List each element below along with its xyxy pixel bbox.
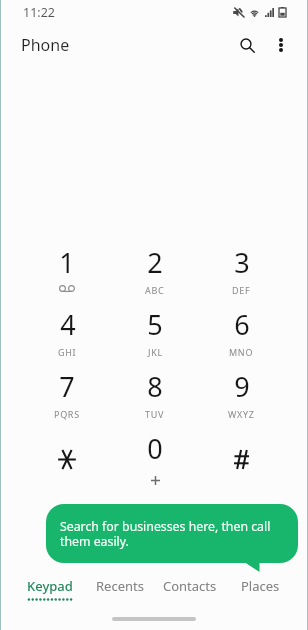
staticText: 1 bbox=[59, 244, 75, 281]
staticText: MNO bbox=[229, 346, 254, 358]
staticText: 9 bbox=[234, 368, 250, 405]
staticText: 5 bbox=[147, 306, 163, 343]
staticText: 6 bbox=[234, 306, 250, 343]
button[interactable]: 7 bbox=[23, 368, 111, 430]
staticText: PQRS bbox=[54, 408, 80, 420]
button[interactable]: Keypad bbox=[14, 577, 85, 602]
staticText: DEF bbox=[232, 284, 251, 296]
button[interactable]: 5 bbox=[111, 306, 198, 368]
button[interactable] bbox=[23, 430, 111, 492]
button[interactable]: Contacts bbox=[155, 577, 225, 602]
staticText: WXYZ bbox=[228, 408, 255, 420]
button[interactable]: 3 bbox=[198, 244, 285, 306]
staticText: GHI bbox=[58, 346, 77, 358]
staticText: 7 bbox=[59, 368, 75, 405]
staticText: Search for businesses here, then call th… bbox=[60, 518, 288, 549]
button[interactable]: 8 bbox=[111, 368, 198, 430]
staticText: Contacts bbox=[163, 577, 217, 595]
staticText: ABC bbox=[145, 284, 165, 296]
staticText: TUV bbox=[145, 408, 165, 420]
button[interactable]: 0 bbox=[111, 430, 198, 492]
staticText: 4 bbox=[60, 306, 76, 343]
button[interactable]: Search bbox=[229, 27, 265, 63]
staticText: Places bbox=[241, 577, 280, 595]
button[interactable]: 1 bbox=[23, 244, 111, 306]
staticText: 11:22 bbox=[23, 4, 55, 21]
button[interactable]: 4 bbox=[23, 306, 111, 368]
button[interactable]: 6 bbox=[198, 306, 285, 368]
button[interactable]: Places bbox=[225, 577, 295, 602]
staticText: Recents bbox=[96, 577, 144, 595]
button[interactable]: 2 bbox=[111, 244, 198, 306]
button[interactable]: More options bbox=[265, 29, 297, 61]
button[interactable]: Recents bbox=[85, 577, 155, 602]
staticText: Keypad bbox=[27, 577, 73, 595]
staticText: Phone bbox=[21, 34, 70, 56]
button[interactable]: 9 bbox=[198, 368, 285, 430]
staticText: 0 bbox=[147, 430, 163, 467]
staticText: 2 bbox=[147, 244, 163, 281]
button[interactable] bbox=[198, 430, 285, 492]
staticText: JKL bbox=[148, 346, 163, 358]
button[interactable]: Search for businesses here, then call th… bbox=[46, 504, 298, 563]
staticText: 8 bbox=[147, 368, 163, 405]
staticText: 3 bbox=[234, 244, 250, 281]
